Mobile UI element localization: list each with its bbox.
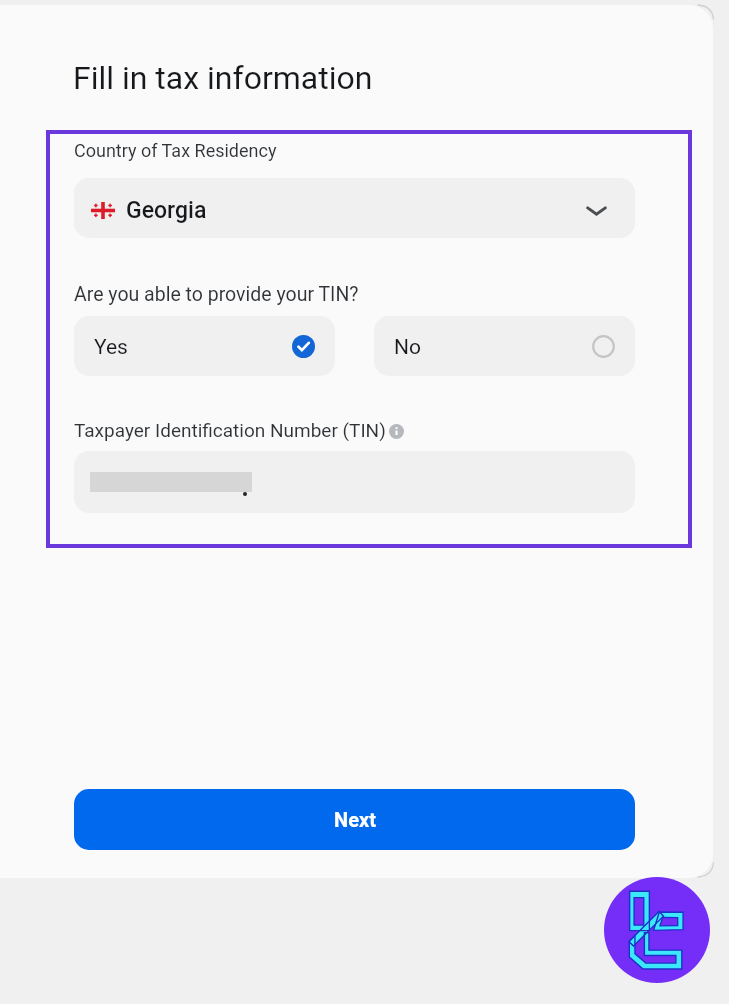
button[interactable]: Yes	[74, 316, 335, 376]
staticText: Next	[334, 808, 376, 831]
staticText: Are you able to provide your TIN?	[74, 283, 359, 306]
staticText: Taxpayer Identification Number (TIN)	[74, 419, 386, 441]
staticText: Georgia	[126, 197, 207, 224]
staticText: Country of Tax Residency	[74, 140, 277, 161]
button[interactable]: Georgia	[74, 178, 635, 238]
button[interactable]	[74, 451, 635, 513]
staticText: No	[394, 335, 421, 360]
other: Unselected	[592, 335, 615, 358]
other: More information	[389, 424, 404, 439]
staticText: Yes	[94, 335, 128, 360]
other: Selected	[292, 335, 315, 358]
button[interactable]: Next	[74, 789, 635, 850]
staticText: Fill in tax information	[73, 59, 373, 97]
button[interactable]: No	[374, 316, 635, 376]
other: Open country dropdown	[586, 205, 607, 217]
